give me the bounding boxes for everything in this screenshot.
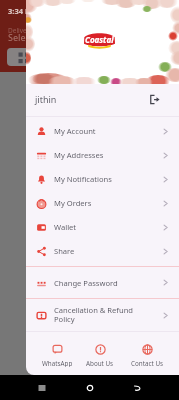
staticText: Share: [54, 246, 75, 256]
staticText: WhatsApp: [42, 359, 73, 367]
button[interactable]: WhatsApp: [40, 332, 74, 375]
staticText: Coastal: [85, 34, 114, 45]
button[interactable]: Cancellation & Refund Policy: [26, 299, 179, 331]
button[interactable]: Change Password: [26, 267, 179, 298]
staticText: My Notifications: [54, 174, 112, 184]
button[interactable]: Share: [26, 239, 179, 263]
staticText: About Us: [86, 359, 114, 367]
button[interactable]: My Addresses: [26, 143, 179, 167]
staticText: My Orders: [54, 198, 92, 208]
button[interactable]: My Orders: [26, 191, 179, 215]
staticText: Wallet: [54, 222, 77, 232]
button[interactable]: Wallet: [26, 215, 179, 239]
button[interactable]: About Us: [85, 332, 115, 375]
button[interactable]: My Notifications: [26, 167, 179, 191]
button[interactable]: Contact Us: [128, 332, 166, 375]
button[interactable]: My Account: [26, 119, 179, 143]
staticText: My Account: [54, 126, 96, 136]
staticText: jithin: [35, 93, 57, 105]
staticText: Contact Us: [131, 359, 164, 367]
staticText: Cancellation & Refund Policy: [54, 305, 134, 325]
button[interactable]: Logout: [147, 92, 161, 106]
staticText: My Addresses: [54, 150, 104, 160]
staticText: Change Password: [54, 278, 118, 288]
staticText: Delivery: [8, 26, 33, 35]
staticText: Select: [8, 31, 34, 43]
staticText: 3:34 PM: [8, 6, 37, 16]
